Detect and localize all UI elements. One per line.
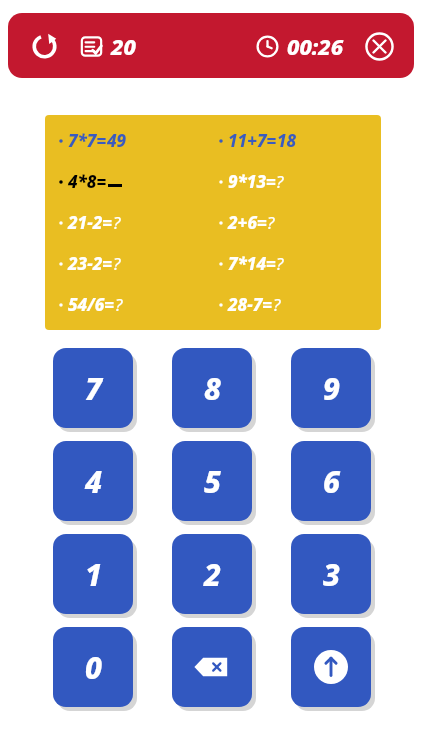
button[interactable]: 23-2= bbox=[57, 243, 121, 284]
button[interactable]: 28-7= bbox=[217, 284, 281, 325]
staticText: 7 bbox=[85, 368, 102, 409]
button[interactable]: 9 bbox=[291, 348, 371, 428]
staticText: 49 bbox=[107, 129, 127, 152]
staticText: ? bbox=[113, 252, 121, 275]
staticText: 7*14= bbox=[228, 252, 276, 275]
staticText: ? bbox=[113, 211, 121, 234]
staticText: 7*7= bbox=[68, 129, 107, 152]
button[interactable]: 11+7= bbox=[217, 120, 297, 161]
staticText: 4*8= bbox=[68, 170, 107, 193]
staticText: 18 bbox=[277, 129, 297, 152]
staticText: 9 bbox=[323, 368, 340, 409]
staticText: 9*13= bbox=[228, 170, 276, 193]
staticText: 11+7= bbox=[228, 129, 277, 152]
staticText: ? bbox=[276, 252, 284, 275]
staticText: 5 bbox=[204, 461, 221, 502]
button[interactable]: 4 bbox=[53, 441, 133, 521]
button[interactable]: 7*14= bbox=[217, 243, 284, 284]
staticText: 21-2= bbox=[68, 211, 113, 234]
staticText: 2 bbox=[204, 554, 221, 595]
button[interactable]: 8 bbox=[172, 348, 252, 428]
staticText: 4 bbox=[85, 461, 102, 502]
button[interactable]: 7*7= bbox=[57, 120, 127, 161]
button[interactable]: 9*13= bbox=[217, 161, 284, 202]
button[interactable]: 0 bbox=[53, 627, 133, 707]
button[interactable]: 2+6= bbox=[217, 202, 275, 243]
button[interactable]: 1 bbox=[53, 534, 133, 614]
button[interactable]: Restart bbox=[22, 24, 66, 68]
staticText: 2+6= bbox=[228, 211, 267, 234]
button[interactable]: 2 bbox=[172, 534, 252, 614]
staticText: 00:26 bbox=[287, 31, 344, 61]
button[interactable]: 4*8= bbox=[57, 161, 122, 202]
button[interactable]: 21-2= bbox=[57, 202, 121, 243]
button[interactable]: 20 bbox=[78, 25, 138, 67]
button[interactable]: Close bbox=[358, 25, 400, 67]
staticText: 0 bbox=[85, 647, 102, 688]
button[interactable]: 6 bbox=[291, 441, 371, 521]
staticText: 6 bbox=[323, 461, 340, 502]
button[interactable]: 54/6= bbox=[57, 284, 123, 325]
staticText: 23-2= bbox=[68, 252, 113, 275]
button[interactable]: 3 bbox=[291, 534, 371, 614]
staticText: 20 bbox=[111, 31, 136, 61]
button[interactable]: Submit bbox=[291, 627, 371, 707]
staticText: ? bbox=[273, 293, 281, 316]
button[interactable]: 00:26 bbox=[254, 25, 346, 67]
button[interactable]: Backspace bbox=[172, 627, 252, 707]
staticText: 3 bbox=[323, 554, 340, 595]
button[interactable]: 5 bbox=[172, 441, 252, 521]
staticText: ? bbox=[267, 211, 275, 234]
staticText: ? bbox=[276, 170, 284, 193]
button[interactable]: 7 bbox=[53, 348, 133, 428]
staticText: 54/6= bbox=[68, 293, 115, 316]
staticText: 28-7= bbox=[228, 293, 273, 316]
staticText: 8 bbox=[204, 368, 221, 409]
staticText: 1 bbox=[85, 554, 102, 595]
staticText: ? bbox=[115, 293, 123, 316]
